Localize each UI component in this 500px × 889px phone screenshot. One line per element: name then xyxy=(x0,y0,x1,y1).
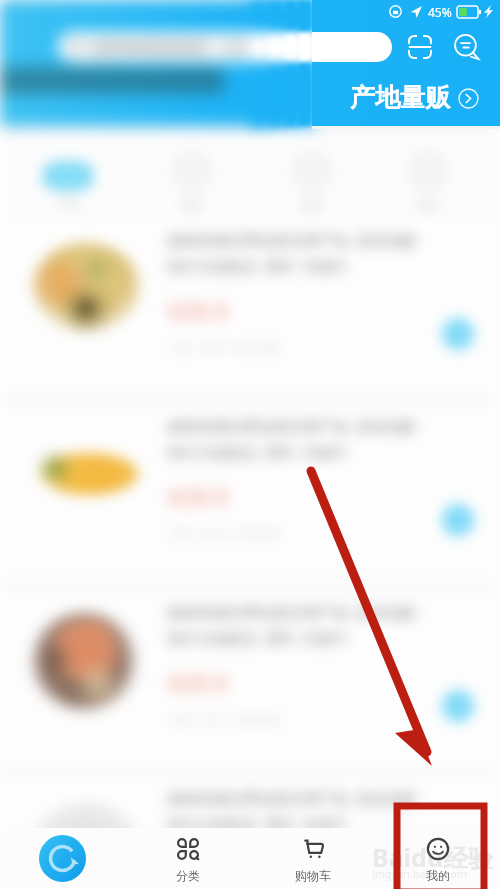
staticText: 分类 xyxy=(176,868,200,883)
staticText: 分类 xyxy=(57,196,79,210)
button[interactable]: Scan code xyxy=(405,32,435,62)
button[interactable]: 我的 xyxy=(375,828,500,889)
button[interactable]: 新鲜采摘当季优质水果产地 直送包邮 xyxy=(0,402,500,586)
staticText: 45% xyxy=(428,4,452,20)
button[interactable]: More xyxy=(457,87,479,109)
button[interactable]: More xyxy=(457,87,479,109)
button[interactable]: Scan code xyxy=(405,32,435,62)
button[interactable]: 新鲜采摘当季优质水果产地 直送包邮 xyxy=(0,216,500,400)
staticText: 顺丰冷链配送 限时 特惠中 xyxy=(168,628,349,648)
button[interactable] xyxy=(58,32,392,62)
button[interactable]: More xyxy=(457,87,479,109)
button[interactable]: Messages xyxy=(452,32,482,62)
staticText: 45% xyxy=(428,4,452,20)
button[interactable]: Messages xyxy=(452,32,482,62)
button[interactable]: More xyxy=(457,87,479,109)
button[interactable]: Messages xyxy=(452,32,482,62)
staticText: jingyan.baidu.com xyxy=(372,866,468,881)
staticText: ¥29.9 xyxy=(168,667,227,698)
staticText: 45% xyxy=(428,4,452,20)
button[interactable]: 新鲜采摘当季优质水果产地 直送包邮 xyxy=(0,774,500,889)
staticText: ¥29.9 xyxy=(168,295,227,326)
staticText: 新鲜采摘当季优质水果产地 直送包邮 xyxy=(168,230,416,250)
button[interactable] xyxy=(58,32,392,62)
button[interactable]: Messages xyxy=(452,32,482,62)
button[interactable]: Scan code xyxy=(405,32,435,62)
staticText: Baidu经验 xyxy=(372,840,494,874)
staticText: 45% xyxy=(428,4,452,20)
staticText: 产地量贩 xyxy=(350,82,450,113)
button[interactable]: Messages xyxy=(452,32,482,62)
staticText: 产地量贩 xyxy=(350,82,450,113)
staticText: 产地量贩 xyxy=(350,82,450,113)
staticText: 顺丰冷链配送 限时 特惠中 xyxy=(168,442,349,462)
staticText: 新鲜采摘当季优质水果产地 直送包邮 xyxy=(168,788,416,808)
staticText: 产地量贩 xyxy=(350,82,450,113)
staticText: 新鲜采摘当季优质水果产地 直送包邮 xyxy=(168,602,416,622)
button[interactable] xyxy=(58,32,392,62)
button[interactable] xyxy=(58,32,392,62)
staticText: 45% xyxy=(428,4,452,20)
staticText: 新鲜采摘当季优质水果产地 直送包邮 xyxy=(168,416,416,436)
button[interactable]: More xyxy=(457,87,479,109)
staticText: 产地量贩 xyxy=(350,82,450,113)
button[interactable]: More xyxy=(457,87,479,109)
staticText: 产地量贩 xyxy=(350,82,450,113)
staticText: 45% xyxy=(428,4,452,20)
button[interactable]: 新鲜采摘当季优质水果产地 直送包邮 xyxy=(0,588,500,772)
staticText: ¥29.9 xyxy=(168,481,227,512)
button[interactable]: Scan code xyxy=(405,32,435,62)
staticText: 顺丰冷链配送 限时 特惠中 xyxy=(168,256,349,276)
staticText: ¥29.9 xyxy=(168,853,227,884)
button[interactable] xyxy=(58,32,392,62)
button[interactable]: 购物车 xyxy=(250,828,375,889)
button[interactable]: Scan code xyxy=(405,32,435,62)
button[interactable]: Home xyxy=(0,828,125,889)
staticText: 我的 xyxy=(426,868,450,883)
button[interactable]: Scan code xyxy=(405,32,435,62)
button[interactable] xyxy=(58,32,392,62)
staticText: 顺丰冷链配送 限时 特惠中 xyxy=(168,814,349,834)
button[interactable]: 分类 xyxy=(125,828,250,889)
staticText: 购物车 xyxy=(295,868,331,883)
button[interactable]: Messages xyxy=(452,32,482,62)
